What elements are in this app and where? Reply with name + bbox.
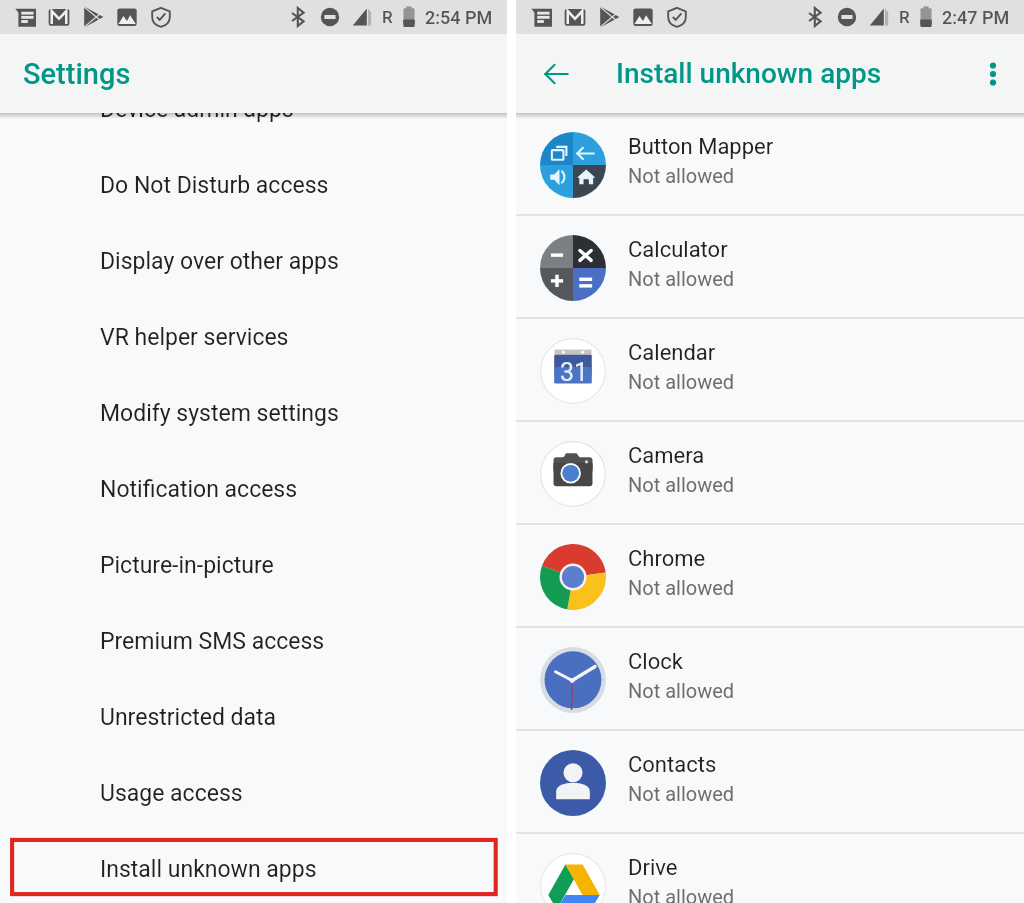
button[interactable]: Usage access [0,755,507,831]
staticText: Modify system settings [100,400,339,427]
staticText: R [382,7,393,27]
staticText: Chrome [628,546,706,572]
staticText: Camera [628,443,705,469]
button[interactable]: Premium SMS access [0,603,507,679]
button[interactable]: Chrome [516,525,1024,628]
staticText: 31 [560,358,589,387]
button[interactable]: Device admin apps [0,71,507,147]
staticText: Button Mapper [628,134,774,160]
button[interactable]: Button Mapper [516,113,1024,216]
button[interactable]: Display over other apps [0,223,507,299]
staticText: 2:54 PM [425,7,493,28]
button[interactable]: Contacts [516,731,1024,834]
button[interactable]: More options [969,50,1017,98]
staticText: Notification access [100,476,298,503]
staticText: Install unknown apps [616,57,882,90]
staticText: Not allowed [628,267,735,290]
button[interactable]: Clock [516,628,1024,731]
staticText: Clock [628,649,683,675]
staticText: Install unknown apps [100,856,317,883]
staticText: R [899,7,910,27]
staticText: Not allowed [628,473,735,496]
button[interactable]: Modify system settings [0,375,507,451]
staticText: Not allowed [628,370,735,393]
staticText: Drive [628,855,678,881]
staticText: Usage access [100,780,243,807]
staticText: 2:47 PM [942,7,1010,28]
button[interactable]: Back [532,50,580,98]
button[interactable]: VR helper services [0,299,507,375]
button[interactable]: Install unknown apps [0,831,507,903]
staticText: Calculator [628,237,728,263]
staticText: Contacts [628,752,717,778]
staticText: Not allowed [628,679,735,702]
staticText: Device admin apps [100,96,294,123]
staticText: Not allowed [628,885,735,903]
staticText: Unrestricted data [100,704,277,731]
staticText: Display over other apps [100,248,339,275]
staticText: Not allowed [628,164,735,187]
staticText: VR helper services [100,324,289,351]
staticText: Do Not Disturb access [100,172,329,199]
button[interactable]: Notification access [0,451,507,527]
staticText: Premium SMS access [100,628,325,655]
staticText: Not allowed [628,576,735,599]
button[interactable]: Do Not Disturb access [0,147,507,223]
button[interactable]: Picture-in-picture [0,527,507,603]
staticText: Not allowed [628,782,735,805]
button[interactable]: Drive [516,834,1024,903]
staticText: Picture-in-picture [100,552,274,579]
button[interactable]: 31 [516,319,1024,422]
staticText: Settings [23,57,131,91]
button[interactable]: Unrestricted data [0,679,507,755]
button[interactable]: Calculator [516,216,1024,319]
staticText: Calendar [628,340,716,366]
button[interactable]: Camera [516,422,1024,525]
